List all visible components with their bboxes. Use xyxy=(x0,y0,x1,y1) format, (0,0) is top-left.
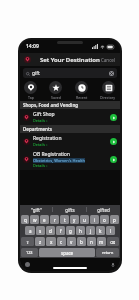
button[interactable]: q xyxy=(21,215,29,224)
staticText: q xyxy=(24,217,27,223)
staticText: ⌫ xyxy=(110,240,116,244)
button[interactable]: ⇧ xyxy=(21,237,34,246)
staticText: d xyxy=(49,228,52,234)
button[interactable]: Clear text xyxy=(109,71,114,76)
button[interactable]: u xyxy=(80,215,89,224)
staticText: e xyxy=(43,217,46,223)
staticText: 123 xyxy=(26,250,33,255)
staticText: 14:09 xyxy=(26,43,39,50)
staticText: Saved xyxy=(51,95,61,100)
staticText: "gift" xyxy=(31,207,42,213)
button[interactable]: gift xyxy=(23,68,117,78)
button[interactable]: Navigate xyxy=(110,156,117,163)
staticText: Obstetrics, Women's Health xyxy=(33,158,85,163)
button[interactable]: "gift" xyxy=(20,205,52,214)
button[interactable]: ⌫ xyxy=(107,237,119,246)
staticText: p xyxy=(113,217,116,223)
staticText: h xyxy=(79,228,82,234)
button[interactable]: d xyxy=(46,226,55,235)
other: App logo xyxy=(24,56,31,63)
staticText: n xyxy=(90,239,93,245)
staticText: Details › xyxy=(33,142,48,147)
button[interactable]: y xyxy=(70,215,79,224)
button[interactable]: return xyxy=(96,248,119,257)
button[interactable]: Dictation xyxy=(111,263,115,267)
button[interactable]: j xyxy=(86,226,95,235)
staticText: u xyxy=(83,217,86,223)
button[interactable]: Navigate xyxy=(110,138,117,145)
button[interactable]: w xyxy=(30,215,39,224)
button[interactable]: Saved xyxy=(48,81,63,100)
button[interactable]: h xyxy=(76,226,85,235)
staticText: Details › xyxy=(33,163,48,168)
button[interactable]: gifts xyxy=(53,205,86,214)
staticText: Details › xyxy=(33,118,48,123)
staticText: x xyxy=(50,239,53,245)
staticText: Departments xyxy=(23,126,53,132)
button[interactable]: v xyxy=(67,237,76,246)
button[interactable]: a xyxy=(25,226,35,235)
staticText: return xyxy=(102,250,114,255)
staticText: Shops, Food and Vending xyxy=(23,102,79,108)
button[interactable]: OB Registration xyxy=(20,149,120,170)
button[interactable]: Gift Shop xyxy=(20,109,120,125)
staticText: Set Your Destination xyxy=(40,56,100,64)
staticText: j xyxy=(90,228,92,234)
staticText: gifted xyxy=(97,207,110,213)
staticText: Tap xyxy=(28,95,34,100)
button[interactable]: Emoji xyxy=(25,262,30,267)
button[interactable]: gifted xyxy=(87,205,120,214)
staticText: Cancel xyxy=(101,57,116,63)
staticText: gifts xyxy=(65,207,75,213)
button[interactable]: Cancel xyxy=(97,57,120,63)
button[interactable]: f xyxy=(56,226,65,235)
staticText: Recent xyxy=(76,95,88,100)
staticText: Registration xyxy=(33,135,62,142)
button[interactable]: b xyxy=(77,237,86,246)
staticText: space xyxy=(61,250,74,256)
button[interactable]: Registration xyxy=(20,133,120,149)
staticText: i xyxy=(94,217,96,223)
button[interactable]: Recent xyxy=(74,81,89,100)
staticText: r xyxy=(54,217,56,223)
staticText: o xyxy=(103,217,106,223)
staticText: g xyxy=(69,228,72,234)
button[interactable]: n xyxy=(87,237,96,246)
staticText: y xyxy=(73,217,76,223)
button[interactable]: Tap xyxy=(23,81,38,100)
button[interactable]: e xyxy=(40,215,49,224)
button[interactable]: z xyxy=(35,237,45,246)
staticText: v xyxy=(70,239,73,245)
staticText: Directory xyxy=(100,95,116,100)
staticText: Gift Shop xyxy=(33,111,55,118)
staticText: z xyxy=(39,239,42,245)
staticText: b xyxy=(80,239,83,245)
button[interactable]: o xyxy=(100,215,109,224)
staticText: s xyxy=(39,228,42,234)
button[interactable]: p xyxy=(110,215,119,224)
button[interactable]: i xyxy=(90,215,99,224)
button[interactable]: k xyxy=(96,226,105,235)
staticText: c xyxy=(60,239,63,245)
button[interactable]: space xyxy=(39,248,95,257)
button[interactable]: l xyxy=(106,226,115,235)
staticText: OB Registration xyxy=(33,151,70,158)
button[interactable]: g xyxy=(66,226,75,235)
button[interactable]: 123 xyxy=(21,248,38,257)
button[interactable]: Directory xyxy=(99,81,117,100)
staticText: gift xyxy=(32,70,40,77)
staticText: l xyxy=(110,228,112,234)
staticText: ⇧ xyxy=(26,240,30,244)
staticText: a xyxy=(29,228,32,234)
button[interactable]: Navigate xyxy=(110,114,117,121)
staticText: f xyxy=(60,228,62,234)
staticText: m xyxy=(99,239,104,245)
staticText: t xyxy=(64,217,66,223)
button[interactable]: m xyxy=(97,237,106,246)
staticText: w xyxy=(33,217,37,223)
button[interactable]: s xyxy=(36,226,45,235)
button[interactable]: c xyxy=(57,237,66,246)
button[interactable]: t xyxy=(60,215,69,224)
button[interactable]: x xyxy=(46,237,56,246)
button[interactable]: r xyxy=(50,215,59,224)
